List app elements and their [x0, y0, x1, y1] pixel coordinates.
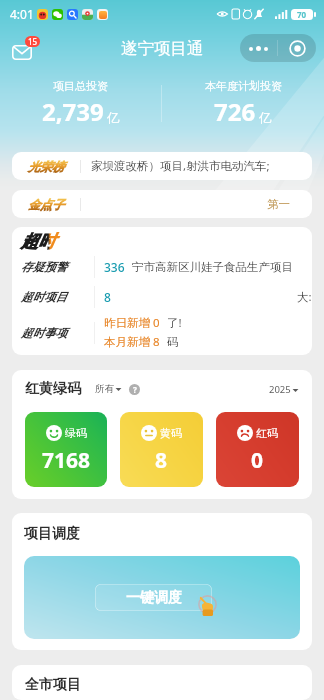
- button[interactable]: More options: [240, 34, 277, 62]
- staticText: 黄码: [160, 426, 182, 440]
- button[interactable]: 绿码: [25, 412, 107, 487]
- staticText: 金点子: [28, 197, 64, 212]
- staticText: 超时项目: [21, 290, 67, 304]
- button[interactable]: 一键调度: [24, 556, 300, 639]
- staticText: 70: [297, 9, 307, 20]
- staticText: 第一: [267, 197, 290, 211]
- button[interactable]: 光荣榜: [12, 152, 312, 180]
- staticText: 0: [251, 446, 264, 475]
- staticText: 2,739: [42, 95, 104, 128]
- staticText: 一键调度: [126, 589, 182, 607]
- staticText: 家坝渡改桥）项目,射洪市电动汽车;: [91, 158, 270, 174]
- staticText: 4:01: [10, 6, 34, 22]
- staticText: 15: [28, 36, 38, 47]
- staticText: 2025: [269, 383, 291, 396]
- staticText: 8: [104, 289, 111, 305]
- staticText: 光荣榜: [28, 159, 64, 174]
- staticText: 绿码: [65, 426, 87, 440]
- staticText: 超时: [21, 231, 55, 252]
- staticText: 超时事项: [21, 326, 67, 340]
- staticText: 本年度计划投资: [205, 79, 282, 93]
- staticText: 本月新增 8: [104, 334, 160, 350]
- staticText: 红码: [256, 426, 278, 440]
- staticText: 宁市高新区川娃子食品生产项目: [132, 260, 293, 274]
- staticText: 亿: [259, 110, 272, 126]
- button[interactable]: 2025: [269, 383, 299, 396]
- staticText: 遂宁项目通: [121, 38, 204, 59]
- staticText: 项目调度: [24, 525, 80, 543]
- staticText: 7168: [42, 446, 91, 475]
- staticText: 全市项目: [25, 676, 81, 694]
- staticText: 了!: [167, 315, 182, 331]
- staticText: 8: [155, 446, 168, 475]
- button[interactable]: 黄码: [120, 412, 203, 487]
- staticText: 336: [104, 259, 125, 275]
- staticText: 所有: [95, 383, 114, 395]
- staticText: 726: [214, 95, 256, 128]
- staticText: 存疑预警: [21, 260, 67, 274]
- staticText: 大:: [297, 289, 312, 305]
- staticText: ?: [133, 384, 137, 395]
- staticText: 码: [167, 335, 179, 349]
- staticText: 红黄绿码: [25, 380, 81, 398]
- button[interactable]: Help: [129, 384, 140, 395]
- button[interactable]: 红码: [216, 412, 299, 487]
- staticText: 亿: [107, 110, 120, 126]
- button[interactable]: Close mini program: [278, 34, 316, 62]
- staticText: 昨日新增 0: [104, 315, 160, 331]
- button[interactable]: 所有: [95, 383, 122, 395]
- button[interactable]: Messages: [12, 36, 44, 60]
- staticText: 项目总投资: [53, 79, 108, 93]
- button[interactable]: 金点子: [12, 190, 312, 218]
